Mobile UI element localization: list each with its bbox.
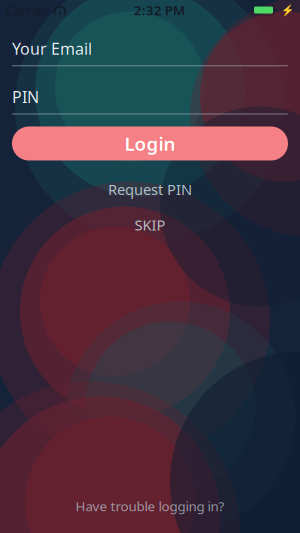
button[interactable]: SKIP (0, 210, 300, 239)
staticText: Have trouble logging in? (75, 497, 224, 515)
staticText: PIN (12, 86, 39, 107)
staticText: Carrier (6, 1, 50, 19)
button[interactable]: Login (12, 126, 288, 160)
button[interactable]: Request PIN (0, 174, 300, 204)
staticText: ⚡ (281, 4, 294, 16)
staticText: SKIP (134, 215, 165, 234)
staticText: 2:32 PM (134, 1, 185, 19)
staticText: Login (124, 131, 175, 156)
button[interactable]: Have trouble logging in? (0, 491, 300, 521)
staticText: Request PIN (108, 179, 192, 199)
staticText: Your Email (12, 38, 92, 59)
